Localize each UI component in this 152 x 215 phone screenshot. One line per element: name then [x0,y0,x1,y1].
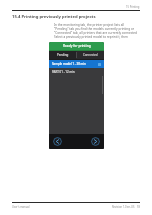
button[interactable]: Pending [49,51,76,59]
staticText: 15 Printing [126,5,140,9]
staticText: "Pending" tab you find the models curren… [54,27,138,31]
staticText: Revision 1.0 en-US 59 [112,205,140,209]
button[interactable]: Back [53,137,62,146]
staticText: Connected [83,53,98,57]
staticText: Sample model 1 - 38 min [52,62,86,66]
staticText: Ready for printing [63,44,91,48]
staticText: "Connected" tab, all printers that are c… [54,31,138,35]
staticText: PART 01 - 12 min [52,70,75,74]
staticText: 15.4 Printing previously printed project… [12,14,96,20]
staticText: In the monitoring tab, the printer proje… [54,23,138,27]
button[interactable]: Forward [91,137,100,146]
button[interactable]: Connected [77,51,104,59]
staticText: Select a previously printed model to rep… [54,35,138,39]
button[interactable]: Sample model 1 - 38 min [49,60,104,68]
button[interactable]: PART 01 - 12 min [49,68,104,76]
staticText: User's manual [12,205,30,209]
staticText: Pending [57,53,69,57]
button[interactable]: Ready for printing [49,42,104,50]
